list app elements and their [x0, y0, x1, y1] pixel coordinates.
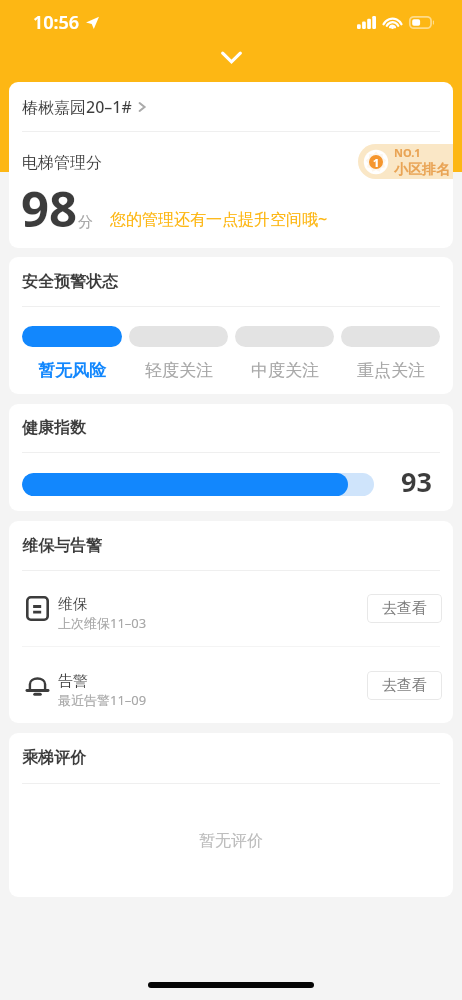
- staticText: 1: [373, 155, 380, 170]
- staticText: 93: [401, 463, 432, 500]
- staticText: 轻度关注: [145, 360, 213, 381]
- button[interactable]: 维保: [9, 571, 453, 646]
- staticText: 乘梯评价: [22, 748, 86, 768]
- button[interactable]: 告警: [9, 647, 453, 723]
- staticText: 暂无评价: [199, 831, 263, 851]
- staticText: 告警: [58, 672, 88, 691]
- staticText: 去查看: [382, 676, 427, 695]
- staticText: 维保: [58, 595, 88, 614]
- staticText: NO.1: [394, 145, 421, 160]
- staticText: 健康指数: [22, 418, 86, 438]
- staticText: 最近告警11–09: [58, 691, 147, 709]
- staticText: 您的管理还有一点提升空间哦~: [110, 208, 328, 230]
- staticText: 重点关注: [357, 360, 425, 381]
- staticText: 分: [78, 213, 93, 232]
- button[interactable]: 椿楸嘉园20–1#: [9, 82, 453, 131]
- staticText: 椿楸嘉园20–1#: [22, 96, 132, 118]
- staticText: 去查看: [382, 599, 427, 618]
- staticText: 暂无风险: [38, 360, 106, 381]
- button[interactable]: Collapse: [0, 44, 462, 70]
- button[interactable]: 1: [358, 144, 453, 179]
- button[interactable]: 去查看: [367, 671, 442, 700]
- staticText: 上次维保11–03: [58, 614, 147, 632]
- staticText: 电梯管理分: [22, 153, 102, 173]
- staticText: 98: [21, 175, 78, 242]
- button[interactable]: 去查看: [367, 594, 442, 623]
- staticText: 维保与告警: [22, 536, 102, 556]
- staticText: 中度关注: [251, 360, 319, 381]
- staticText: 10:56: [33, 10, 80, 35]
- staticText: 小区排名: [394, 161, 450, 179]
- staticText: 安全预警状态: [22, 272, 118, 292]
